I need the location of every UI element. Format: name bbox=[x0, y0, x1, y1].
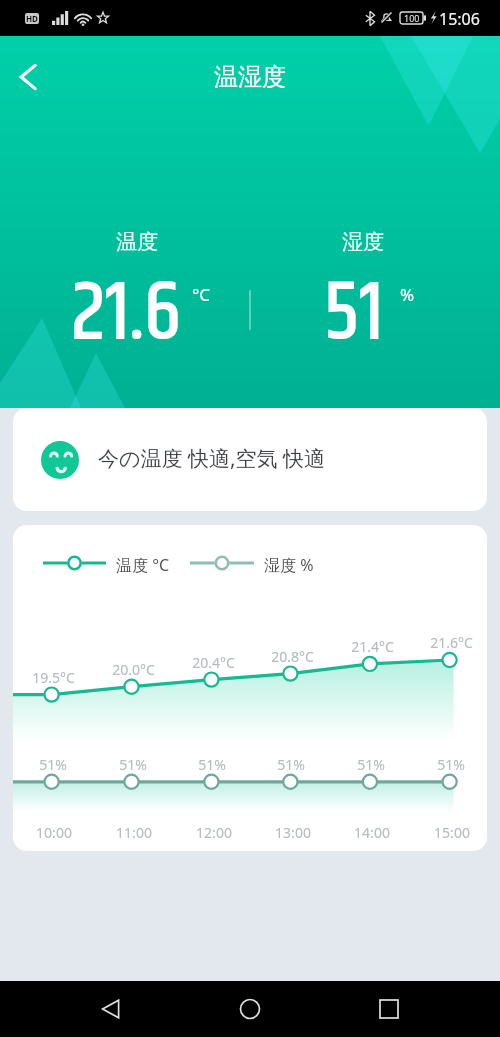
staticText: 11:00 bbox=[116, 823, 152, 842]
staticText: 20.4°C bbox=[192, 653, 235, 672]
staticText: 15:06 bbox=[439, 8, 480, 30]
staticText: 12:00 bbox=[196, 823, 232, 842]
staticText: 10:00 bbox=[36, 823, 72, 842]
staticText: 51% bbox=[198, 755, 226, 774]
staticText: 温度 bbox=[116, 229, 158, 255]
button[interactable]: Recents bbox=[361, 981, 417, 1037]
staticText: °C bbox=[192, 283, 211, 306]
staticText: HD bbox=[26, 13, 38, 24]
staticText: 湿度 bbox=[342, 229, 384, 255]
staticText: 51 bbox=[324, 252, 384, 379]
staticText: 温湿度 bbox=[214, 62, 286, 92]
staticText: 14:00 bbox=[354, 823, 390, 842]
staticText: 100 bbox=[404, 12, 420, 24]
staticText: 20.0°C bbox=[112, 660, 155, 679]
staticText: 51% bbox=[437, 755, 465, 774]
button[interactable]: Home bbox=[222, 981, 278, 1037]
staticText: 13:00 bbox=[275, 823, 311, 842]
staticText: 20.8°C bbox=[271, 647, 314, 666]
staticText: 温度 °C bbox=[116, 554, 170, 576]
staticText: 21.6°C bbox=[430, 633, 473, 652]
staticText: 21.6 bbox=[71, 252, 181, 379]
staticText: % bbox=[400, 283, 415, 306]
staticText: 湿度 % bbox=[264, 554, 314, 576]
button[interactable]: Back bbox=[83, 981, 139, 1037]
staticText: 今の温度 快適,空気 快適 bbox=[98, 444, 326, 473]
staticText: 51% bbox=[39, 755, 67, 774]
staticText: 19.5°C bbox=[32, 668, 75, 687]
staticText: 51% bbox=[277, 755, 305, 774]
staticText: 15:00 bbox=[434, 823, 470, 842]
staticText: 51% bbox=[119, 755, 147, 774]
button[interactable]: Back bbox=[0, 48, 58, 106]
staticText: 51% bbox=[357, 755, 385, 774]
button[interactable]: 今の温度 快適,空気 快適 bbox=[13, 408, 487, 511]
staticText: 21.4°C bbox=[351, 637, 394, 656]
